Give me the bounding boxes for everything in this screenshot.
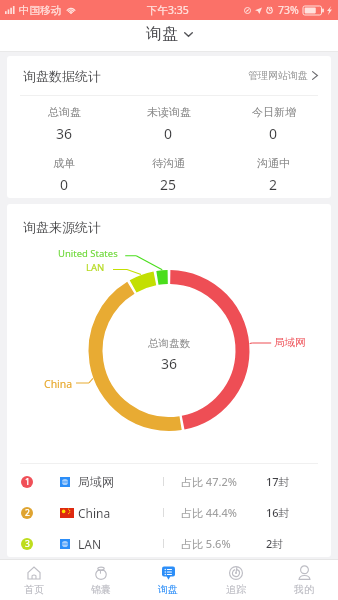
staticText: 占比 47.2% <box>181 474 266 489</box>
staticText: 36 <box>161 354 178 373</box>
staticText: 今日新增 <box>252 105 296 119</box>
staticText: 1 <box>25 476 30 488</box>
staticText: 17封 <box>266 474 316 489</box>
button[interactable]: 成单 <box>12 152 116 194</box>
staticText: 占比 44.4% <box>181 505 266 520</box>
button[interactable]: 3 <box>7 526 331 557</box>
staticText: 0 <box>164 124 173 143</box>
button[interactable]: 我的 <box>270 560 338 600</box>
staticText: 下午3:35 <box>147 3 189 17</box>
staticText: 0 <box>269 124 278 143</box>
staticText: 2 <box>269 175 278 194</box>
staticText: 管理网站询盘 <box>248 69 308 82</box>
staticText: China <box>78 505 163 521</box>
staticText: 沟通中 <box>257 156 290 170</box>
button[interactable]: 锦囊 <box>67 560 134 600</box>
staticText: 2 <box>25 507 30 519</box>
staticText: 锦囊 <box>91 583 111 596</box>
staticText: United States <box>58 247 118 260</box>
button[interactable]: 总询盘 <box>12 101 116 143</box>
staticText: 询盘数据统计 <box>23 68 101 84</box>
staticText: 73% <box>278 3 299 17</box>
staticText: LAN <box>78 536 163 552</box>
staticText: 总询盘 <box>48 105 81 119</box>
staticText: 询盘 <box>158 583 178 596</box>
staticText: 首页 <box>24 583 44 596</box>
staticText: 总询盘数 <box>148 337 190 350</box>
staticText: 36 <box>56 124 73 143</box>
staticText: 询盘来源统计 <box>23 219 101 235</box>
button[interactable]: 管理网站询盘 <box>248 69 318 82</box>
staticText: 中国移动 <box>19 4 61 17</box>
button[interactable]: 沟通中 <box>221 152 326 194</box>
button[interactable]: 询盘 <box>134 20 205 48</box>
staticText: 询盘 <box>146 24 178 44</box>
staticText: 0 <box>60 175 69 194</box>
button[interactable]: 待沟通 <box>116 152 221 194</box>
button[interactable]: 追踪 <box>202 560 270 600</box>
staticText: 25 <box>160 175 177 194</box>
staticText: 局域网 <box>274 336 306 349</box>
staticText: 16封 <box>266 505 316 520</box>
button[interactable]: 1 <box>7 464 331 495</box>
staticText: China <box>44 377 73 391</box>
staticText: 追踪 <box>226 583 246 596</box>
staticText: 成单 <box>53 156 75 170</box>
staticText: 占比 5.6% <box>181 536 266 551</box>
staticText: 未读询盘 <box>147 105 191 119</box>
button[interactable]: 首页 <box>0 560 67 600</box>
staticText: LAN <box>86 261 105 274</box>
button[interactable]: 未读询盘 <box>116 101 221 143</box>
button[interactable]: 询盘 <box>134 560 202 600</box>
staticText: 3 <box>25 538 30 550</box>
staticText: 2封 <box>266 536 316 551</box>
staticText: 待沟通 <box>152 156 185 170</box>
staticText: 我的 <box>294 583 314 596</box>
button[interactable]: 今日新增 <box>221 101 326 143</box>
staticText: 局域网 <box>78 474 163 489</box>
button[interactable]: 2 <box>7 495 331 526</box>
